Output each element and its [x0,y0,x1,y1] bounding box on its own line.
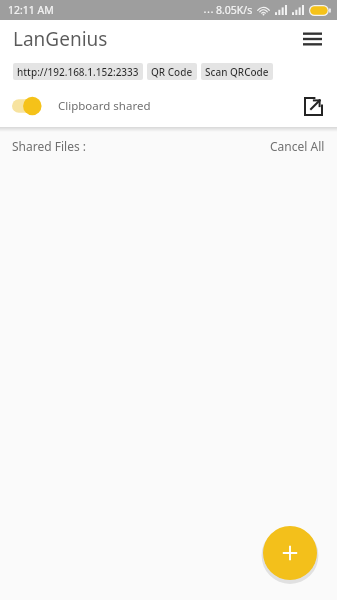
staticText: Shared Files : [12,138,86,154]
button[interactable]: Open externally [297,90,329,122]
button[interactable]: Menu [295,22,329,56]
button[interactable]: Cancel All [258,132,337,160]
staticText: LanGenius [13,26,108,52]
button[interactable]: QR Code [147,63,197,80]
staticText: 12:11 AM [8,3,54,17]
staticText: QR Code [151,65,193,79]
button[interactable]: Scan QRCode [201,63,273,80]
button[interactable]: Clipboard shared [12,95,151,117]
staticText: Scan QRCode [205,65,269,79]
staticText: http://192.168.1.152:2333 [17,65,139,79]
staticText: Clipboard shared [58,98,151,114]
button[interactable]: http://192.168.1.152:2333 [13,63,143,80]
button[interactable] [12,95,48,117]
staticText: 8.05K/s [216,3,253,17]
button[interactable]: Add [263,526,317,580]
staticText: Cancel All [270,138,325,154]
